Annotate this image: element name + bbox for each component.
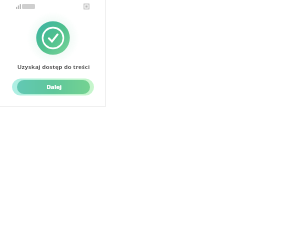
staticText: Uzyskaj dostęp do treści (17, 63, 90, 71)
button[interactable]: Dalej (17, 80, 90, 94)
staticText: Dalej (46, 83, 62, 91)
